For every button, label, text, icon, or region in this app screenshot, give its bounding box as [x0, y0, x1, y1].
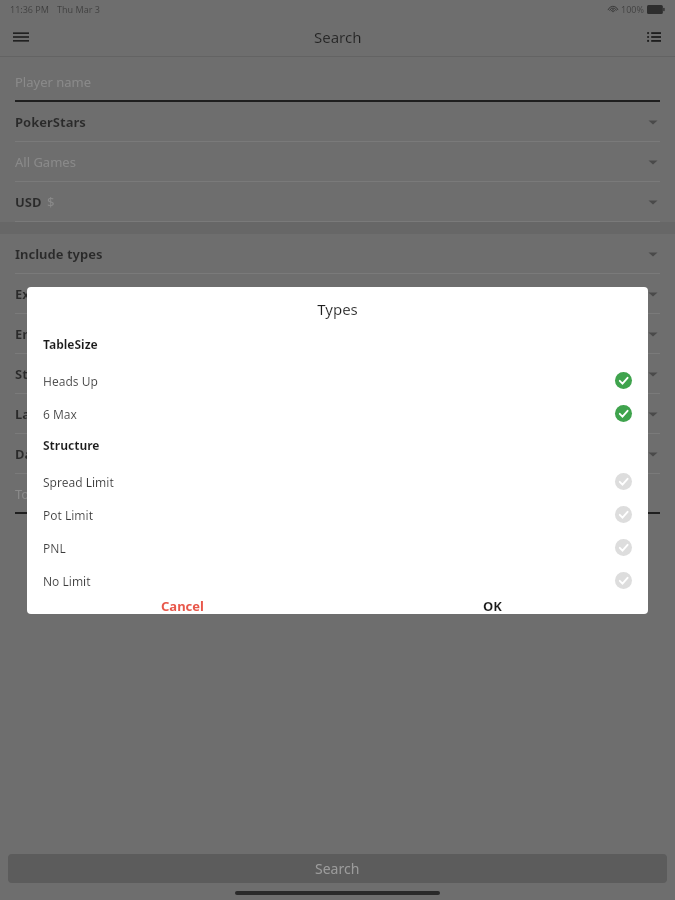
- staticText: 100%: [621, 3, 644, 15]
- button[interactable]: Heads Up: [27, 364, 648, 397]
- button[interactable]: USD: [0, 182, 675, 222]
- button[interactable]: List options: [641, 24, 667, 50]
- button[interactable]: PokerStars: [0, 102, 675, 142]
- button[interactable]: Pot Limit: [27, 498, 648, 531]
- staticText: 11:36 PM: [10, 3, 49, 15]
- button[interactable]: PNL: [27, 531, 648, 564]
- staticText: Spread Limit: [43, 474, 114, 490]
- button[interactable]: Include types: [0, 234, 675, 274]
- staticText: Entry: [15, 325, 50, 343]
- button[interactable]: No Limit: [27, 564, 648, 597]
- staticText: Stakes: [15, 365, 58, 383]
- staticText: USD: [15, 193, 42, 211]
- staticText: Include types: [15, 245, 103, 263]
- button[interactable]: Search: [8, 854, 667, 883]
- staticText: Pot Limit: [43, 507, 94, 523]
- staticText: Exclude types: [15, 285, 104, 303]
- staticText: PokerStars: [15, 113, 86, 131]
- staticText: Search: [314, 27, 362, 47]
- button[interactable]: Tournament name: [0, 474, 675, 514]
- staticText: Structure: [43, 437, 100, 453]
- staticText: PNL: [43, 540, 66, 556]
- staticText: Thu Mar 3: [57, 3, 100, 15]
- button[interactable]: Player name: [0, 62, 675, 102]
- button[interactable]: Cancel: [27, 597, 337, 614]
- staticText: OK: [483, 597, 502, 614]
- staticText: Date: [15, 445, 46, 463]
- button[interactable]: 6 Max: [27, 397, 648, 430]
- button[interactable]: Stakes: [0, 354, 675, 394]
- button[interactable]: Late reg: [0, 394, 675, 434]
- staticText: Search: [315, 859, 360, 878]
- staticText: Tournament name: [15, 485, 129, 503]
- button[interactable]: Spread Limit: [27, 465, 648, 498]
- button[interactable]: Date: [0, 434, 675, 474]
- staticText: $: [47, 193, 55, 211]
- staticText: No Limit: [43, 573, 91, 589]
- staticText: Heads Up: [43, 373, 98, 389]
- staticText: Types: [27, 299, 648, 319]
- staticText: Player name: [15, 73, 92, 91]
- staticText: Cancel: [161, 597, 204, 614]
- button[interactable]: Entry: [0, 314, 675, 354]
- staticText: 6 Max: [43, 406, 77, 422]
- staticText: All Games: [15, 153, 76, 171]
- staticText: Late reg: [15, 405, 69, 423]
- staticText: TableSize: [43, 336, 98, 352]
- button[interactable]: OK: [337, 597, 648, 614]
- button[interactable]: Exclude types: [0, 274, 675, 314]
- button[interactable]: Menu: [8, 24, 34, 50]
